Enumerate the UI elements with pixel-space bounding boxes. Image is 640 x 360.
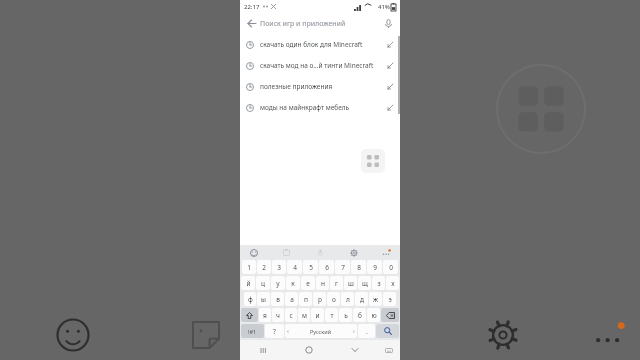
staticText: г — [335, 279, 338, 288]
button[interactable]: п — [299, 292, 312, 306]
button[interactable]: к — [286, 276, 300, 290]
staticText: Поиск игр и приложений — [260, 19, 346, 29]
button[interactable]: щ — [358, 276, 371, 290]
button[interactable]: з — [372, 276, 385, 290]
staticText: е — [306, 279, 310, 288]
staticText: ш — [348, 279, 354, 288]
button[interactable]: г — [330, 276, 343, 290]
staticText: ф — [248, 295, 253, 304]
button[interactable]: 0 — [383, 260, 398, 274]
button[interactable]: б — [353, 308, 366, 322]
staticText: 41% — [378, 3, 390, 11]
button[interactable]: д — [355, 292, 368, 306]
staticText: 3 — [277, 263, 281, 272]
button[interactable]: Home — [286, 340, 332, 360]
button[interactable]: 9 — [367, 260, 382, 274]
button[interactable]: й — [241, 276, 255, 290]
button[interactable]: о — [327, 292, 340, 306]
staticText: 1 — [247, 263, 251, 272]
button[interactable]: . — [358, 324, 375, 338]
button[interactable]: ц — [256, 276, 270, 290]
button[interactable]: х — [386, 276, 399, 290]
button[interactable]: я — [259, 308, 271, 322]
button[interactable]: Stickers — [191, 320, 221, 350]
staticText: в — [276, 295, 280, 304]
staticText: к — [291, 279, 295, 288]
button[interactable]: моды на майнкрафт мебель — [240, 97, 400, 118]
button[interactable]: с — [285, 308, 297, 322]
staticText: ы — [261, 295, 266, 304]
staticText: а — [290, 295, 294, 304]
button[interactable]: Voice search — [380, 15, 397, 32]
button[interactable]: Search — [376, 324, 399, 338]
button[interactable]: ы — [257, 292, 270, 306]
staticText: з — [377, 279, 381, 288]
button[interactable]: 8 — [351, 260, 366, 274]
button[interactable]: 6 — [319, 260, 334, 274]
button[interactable]: ш — [344, 276, 357, 290]
button[interactable]: Emoji — [56, 318, 90, 352]
button[interactable]: у — [271, 276, 285, 290]
staticText: Русский — [310, 328, 332, 335]
button[interactable]: Shift — [241, 308, 258, 322]
button[interactable]: 5 — [303, 260, 318, 274]
button[interactable]: ю — [367, 308, 380, 322]
button[interactable]: More options — [592, 320, 626, 348]
button[interactable]: скачать мод на о...й тинти Minecraft — [240, 55, 400, 76]
button[interactable]: л — [341, 292, 354, 306]
button[interactable]: !#1 — [241, 324, 264, 338]
button[interactable]: Emoji — [248, 247, 259, 258]
button[interactable]: т — [325, 308, 338, 322]
button[interactable]: ь — [339, 308, 352, 322]
button[interactable]: 1 — [242, 260, 256, 274]
button[interactable]: е — [301, 276, 315, 290]
staticText: л — [346, 295, 350, 304]
button[interactable]: Voice input — [315, 247, 326, 258]
button[interactable]: Settings — [488, 320, 518, 350]
button[interactable]: Backspace — [381, 308, 399, 322]
button[interactable]: ж — [369, 292, 382, 306]
staticText: 4 — [293, 263, 297, 272]
button[interactable]: Back — [243, 15, 260, 32]
staticText: 22:17 — [244, 3, 260, 11]
button[interactable]: 2 — [257, 260, 271, 274]
staticText: !#1 — [248, 328, 257, 335]
staticText: с — [289, 311, 293, 320]
staticText: ж — [373, 295, 378, 304]
staticText: п — [304, 295, 308, 304]
staticText: моды на майнкрафт мебель — [260, 103, 350, 112]
button[interactable]: Keyboard layout — [378, 340, 400, 360]
button[interactable]: Поиск игр и приложений — [260, 13, 380, 34]
staticText: скачать мод на о...й тинти Minecraft — [260, 61, 374, 70]
button[interactable]: ф — [244, 292, 256, 306]
button[interactable]: в — [271, 292, 284, 306]
button[interactable]: Apps — [495, 63, 587, 155]
staticText: у — [276, 279, 280, 288]
button[interactable]: Recents — [240, 340, 286, 360]
button[interactable]: а — [285, 292, 298, 306]
button[interactable]: м — [298, 308, 310, 322]
button[interactable]: 7 — [335, 260, 350, 274]
button[interactable]: Clipboard — [281, 247, 292, 258]
button[interactable]: 4 — [287, 260, 302, 274]
button[interactable]: полезные приложения — [240, 76, 400, 97]
staticText: 8 — [357, 263, 361, 272]
staticText: и — [315, 311, 320, 320]
button[interactable]: э — [383, 292, 396, 306]
button[interactable]: ? — [265, 324, 284, 338]
button[interactable]: Apps — [361, 149, 385, 173]
button[interactable]: More — [381, 247, 392, 258]
button[interactable]: р — [313, 292, 326, 306]
button[interactable]: скачать один блок для Minecraft — [240, 34, 400, 55]
staticText: ц — [261, 279, 265, 288]
staticText: полезные приложения — [260, 82, 333, 91]
staticText: ? — [273, 327, 276, 336]
button[interactable]: Keyboard settings — [348, 247, 359, 258]
button[interactable]: и — [311, 308, 324, 322]
button[interactable]: н — [316, 276, 329, 290]
button[interactable]: ‹ — [285, 324, 357, 338]
button[interactable]: ч — [272, 308, 284, 322]
staticText: 2 — [262, 263, 266, 272]
button[interactable]: 3 — [272, 260, 286, 274]
button[interactable]: Hide keyboard — [332, 340, 378, 360]
